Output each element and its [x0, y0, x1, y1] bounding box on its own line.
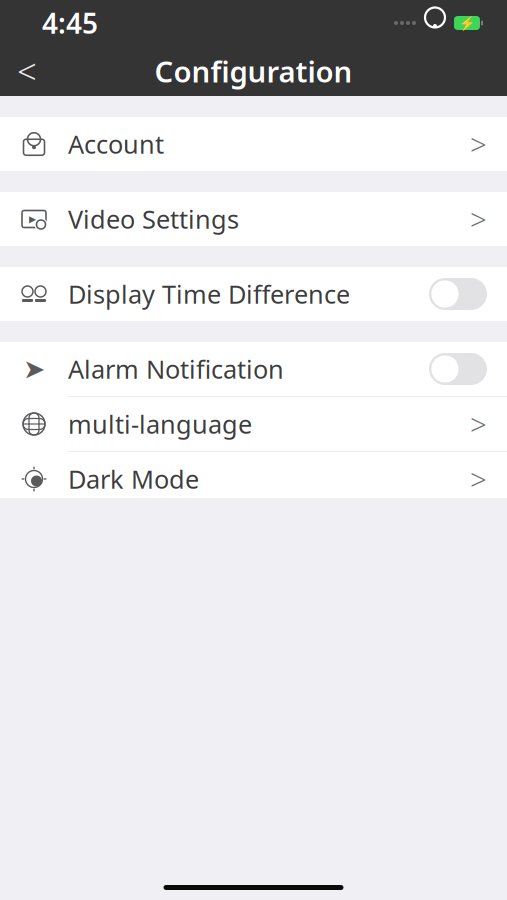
- button[interactable]: Display Time Difference: [0, 267, 507, 321]
- staticText: multi-language: [68, 407, 252, 441]
- staticText: Configuration: [154, 51, 352, 90]
- button[interactable]: Account: [0, 117, 507, 171]
- staticText: 4:45: [42, 4, 98, 42]
- staticText: ➤: [23, 354, 45, 384]
- button[interactable]: Back: [0, 46, 54, 96]
- button[interactable]: ➤: [0, 342, 507, 396]
- staticText: >: [470, 404, 487, 443]
- staticText: ▶: [29, 214, 36, 224]
- staticText: Video Settings: [68, 202, 239, 236]
- staticText: Alarm Notification: [68, 352, 284, 386]
- staticText: >: [470, 199, 487, 238]
- staticText: ⚡: [458, 15, 475, 31]
- staticText: >: [470, 124, 487, 163]
- staticText: Display Time Difference: [68, 277, 350, 311]
- button[interactable]: Dark Mode: [0, 452, 507, 506]
- staticText: >: [470, 459, 487, 498]
- staticText: Account: [68, 127, 164, 161]
- staticText: <: [17, 48, 37, 94]
- button[interactable]: multi-language: [0, 397, 507, 451]
- button[interactable]: ▶: [0, 192, 507, 246]
- staticText: Dark Mode: [68, 462, 199, 496]
